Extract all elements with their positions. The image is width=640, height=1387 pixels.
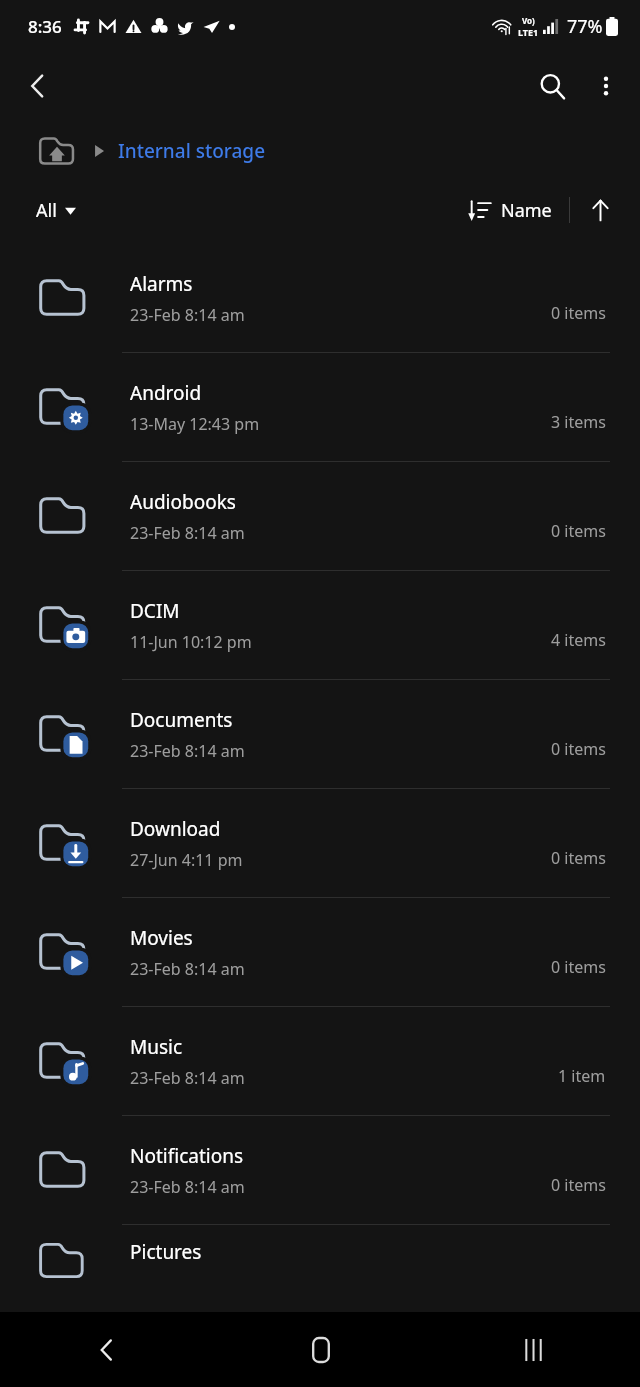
button[interactable]: All [30,198,82,223]
button[interactable]: Alarms [0,244,640,352]
staticText: 0 items [551,520,606,542]
staticText: 0 items [551,1174,606,1196]
button[interactable]: Home [34,128,80,174]
button[interactable]: Audiobooks [0,462,640,570]
staticText: DCIM [130,598,180,624]
staticText: LTE1 [518,26,539,38]
staticText: Documents [130,707,233,733]
staticText: 23-Feb 8:14 am [130,304,245,326]
staticText: 8:36 [28,15,62,38]
button[interactable]: Notifications [0,1116,640,1224]
button[interactable]: Documents [0,680,640,788]
staticText: Music [130,1034,183,1060]
button[interactable]: Back [10,58,66,114]
staticText: 0 items [551,956,606,978]
staticText: All [36,198,57,223]
button[interactable]: Name [464,192,556,229]
staticText: Notifications [130,1143,244,1169]
staticText: 1 item [558,1065,606,1087]
button[interactable]: DCIM [0,571,640,679]
staticText: 23-Feb 8:14 am [130,522,245,544]
staticText: Android [130,380,202,406]
staticText: Internal storage [118,138,266,164]
button[interactable]: Internal storage [118,138,266,164]
staticText: Vo) [522,15,535,26]
staticText: 77% [567,14,603,39]
staticText: 13-May 12:43 pm [130,413,260,435]
staticText: Pictures [130,1239,202,1265]
staticText: 4 items [551,629,606,651]
staticText: 0 items [551,302,606,324]
staticText: 11-Jun 10:12 pm [130,631,252,653]
button[interactable]: More options [580,60,632,112]
staticText: Download [130,816,221,842]
staticText: 23-Feb 8:14 am [130,958,245,980]
staticText: Movies [130,925,193,951]
staticText: Name [501,198,552,223]
button[interactable]: Home [214,1312,427,1387]
button[interactable]: Back [0,1312,214,1387]
button[interactable]: Search [524,58,580,114]
button[interactable]: Sort ascending [578,188,622,232]
button[interactable]: Music [0,1007,640,1115]
button[interactable]: Pictures [0,1225,640,1285]
staticText: 23-Feb 8:14 am [130,1176,245,1198]
button[interactable]: Recents [427,1312,640,1387]
staticText: 23-Feb 8:14 am [130,740,245,762]
staticText: 23-Feb 8:14 am [130,1067,245,1089]
staticText: Alarms [130,271,193,297]
button[interactable]: Movies [0,898,640,1006]
staticText: 0 items [551,738,606,760]
button[interactable]: Android [0,353,640,461]
button[interactable]: Download [0,789,640,897]
staticText: 0 items [551,847,606,869]
staticText: 3 items [551,411,606,433]
staticText: 27-Jun 4:11 pm [130,849,243,871]
staticText: Audiobooks [130,489,236,515]
